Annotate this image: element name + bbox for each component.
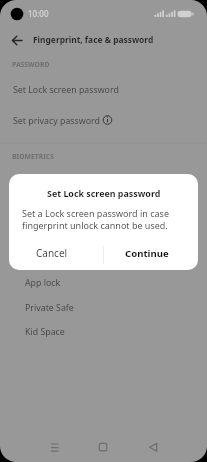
button[interactable]: Cancel <box>9 238 95 268</box>
button[interactable] <box>139 436 167 458</box>
button[interactable]: Set Lock screen password <box>0 76 207 103</box>
staticText: Set Lock screen password <box>13 84 119 96</box>
staticText: Set Lock screen password <box>47 187 161 199</box>
button[interactable]: Continue <box>104 238 190 268</box>
button[interactable] <box>89 436 117 458</box>
button[interactable] <box>0 30 207 50</box>
staticText: Private Safe <box>25 302 74 314</box>
staticText: Continue <box>125 247 169 260</box>
button[interactable]: Private Safe <box>0 296 207 319</box>
staticText: 10:00 <box>28 8 49 19</box>
staticText: Set privacy password <box>13 115 100 127</box>
button[interactable]: Set privacy password <box>0 107 207 134</box>
staticText: App lock <box>25 277 61 289</box>
staticText: PASSWORD <box>12 60 50 69</box>
button[interactable]: Kid Space <box>0 320 207 343</box>
staticText: Set a Lock screen password in case finge… <box>22 207 169 232</box>
staticText: Cancel <box>36 246 68 260</box>
button[interactable] <box>40 436 68 458</box>
staticText: Fingerprint, face & password <box>33 34 154 45</box>
staticText: Kid Space <box>25 326 65 338</box>
staticText: BIOMETRICS <box>12 152 54 161</box>
button[interactable]: App lock <box>0 271 207 294</box>
